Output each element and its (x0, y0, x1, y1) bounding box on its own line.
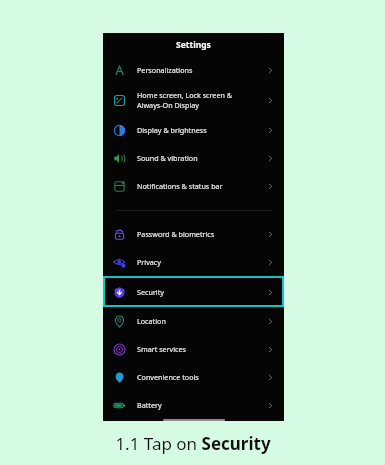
button[interactable]: Display & brightness (103, 116, 284, 144)
button[interactable]: Home screen, Lock screen & Always-On Dis… (103, 83, 284, 116)
button[interactable]: Location (103, 307, 284, 335)
staticText: Notifications & status bar (137, 181, 266, 191)
button[interactable]: Privacy (103, 248, 284, 276)
staticText: Personalizations (137, 65, 266, 75)
button[interactable]: Personalizations (103, 57, 284, 83)
staticText: Smart services (137, 344, 266, 354)
staticText: Display & brightness (137, 125, 266, 135)
staticText: Settings (176, 39, 211, 51)
button[interactable]: Smart services (103, 335, 284, 363)
staticText: Battery (137, 400, 266, 410)
staticText: Convenience tools (137, 372, 266, 382)
staticText: Privacy (137, 257, 266, 267)
staticText: Sound & vibration (137, 153, 266, 163)
button[interactable]: Notifications & status bar (103, 172, 284, 200)
button[interactable]: Security (103, 276, 284, 307)
button[interactable]: Convenience tools (103, 363, 284, 391)
button[interactable]: Password & biometrics (103, 220, 284, 248)
staticText: Security (137, 287, 266, 297)
staticText: Password & biometrics (137, 229, 266, 239)
button[interactable]: Sound & vibration (103, 144, 284, 172)
staticText: 1.1 Tap on Security (115, 432, 271, 455)
button[interactable]: Battery (103, 391, 284, 419)
staticText: Home screen, Lock screen & Always-On Dis… (137, 90, 266, 110)
staticText: Location (137, 316, 266, 326)
